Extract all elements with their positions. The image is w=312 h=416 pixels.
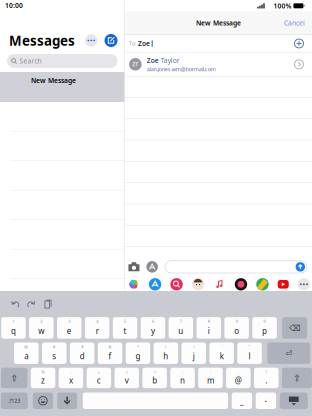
- button[interactable]: 7: [169, 317, 193, 339]
- staticText: v: [125, 375, 129, 386]
- staticText: =: [126, 369, 128, 374]
- button[interactable]: New Message: [0, 72, 124, 102]
- button[interactable]: 2: [29, 317, 54, 339]
- staticText: *: [137, 344, 139, 349]
- staticText: f: [109, 351, 112, 361]
- button[interactable]: /: [142, 368, 167, 388]
- staticText: 4: [96, 319, 98, 324]
- button[interactable]: ,: [226, 368, 251, 388]
- button[interactable]: &: [98, 342, 122, 364]
- staticText: s: [52, 351, 56, 361]
- button[interactable]: ⌫: [282, 317, 307, 339]
- staticText: w: [38, 325, 44, 336]
- button[interactable]: ⏎: [267, 342, 310, 364]
- button[interactable]: ⇧: [282, 368, 312, 388]
- button[interactable]: More apps: [298, 278, 310, 290]
- staticText: alan.jones.wm@hotmail.com: [147, 66, 216, 73]
- button[interactable]: ZT: [125, 53, 312, 76]
- button[interactable]: App Store: [149, 278, 161, 290]
- button[interactable]: Undo: [11, 299, 20, 308]
- button[interactable]: *: [126, 342, 150, 364]
- button[interactable]: Paste: [43, 299, 52, 308]
- button[interactable]: Photos: [127, 278, 140, 290]
- staticText: .: [265, 375, 267, 386]
- staticText: n: [180, 375, 185, 386]
- button[interactable]: Hide keyboard: [280, 392, 308, 409]
- button[interactable]: 1: [1, 317, 26, 339]
- staticText: #: [53, 344, 56, 349]
- button[interactable]: Redo: [26, 299, 35, 308]
- button[interactable]: Music: [213, 278, 226, 290]
- button[interactable]: [83, 392, 228, 409]
- button[interactable]: Cancel: [277, 15, 312, 30]
- button[interactable]: 8: [196, 317, 221, 339]
- button[interactable]: -: [256, 392, 276, 409]
- staticText: a: [24, 351, 28, 361]
- button[interactable]: 5: [113, 317, 137, 339]
- staticText: 5: [124, 319, 126, 324]
- staticText: 0: [264, 319, 266, 324]
- staticText: +: [98, 369, 100, 374]
- staticText: p: [262, 325, 267, 336]
- button[interactable]: (: [154, 342, 178, 364]
- button[interactable]: .?123: [1, 392, 28, 409]
- staticText: ;: [182, 369, 183, 374]
- button[interactable]: %: [31, 368, 55, 388]
- button[interactable]: Add contact: [294, 38, 304, 48]
- staticText: i: [208, 325, 210, 336]
- staticText: 1: [12, 319, 14, 324]
- staticText: New Message: [196, 18, 241, 27]
- button[interactable]: More options: [85, 34, 97, 47]
- staticText: Taylor: [159, 56, 180, 65]
- button[interactable]: Send: [296, 262, 305, 271]
- button[interactable]: ): [181, 342, 206, 364]
- button[interactable]: App Store: [146, 261, 158, 273]
- staticText: ⇧: [293, 373, 301, 383]
- staticText: b: [152, 375, 157, 386]
- staticText: ,: [238, 369, 239, 374]
- button[interactable]: -: [59, 368, 83, 388]
- staticText: 9: [236, 319, 238, 324]
- button[interactable]: Emoji keyboard: [33, 392, 53, 409]
- staticText: 8: [208, 319, 210, 324]
- staticText: r: [96, 325, 99, 336]
- button[interactable]: Store search: [170, 278, 183, 290]
- button[interactable]: YouTube: [278, 280, 289, 289]
- button[interactable]: 3: [57, 317, 81, 339]
- button[interactable]: 0: [252, 317, 277, 339]
- staticText: z: [41, 375, 45, 386]
- button[interactable]: Memoji: [192, 278, 204, 290]
- button[interactable]: ;: [170, 368, 195, 388]
- button[interactable]: ?: [254, 368, 278, 388]
- button[interactable]: ': [209, 342, 234, 364]
- staticText: 6: [152, 319, 154, 324]
- button[interactable]: Camera: [128, 261, 140, 273]
- staticText: x: [69, 375, 73, 386]
- staticText: ': [221, 344, 222, 349]
- button[interactable]: New message: [104, 34, 117, 47]
- button[interactable]: ": [237, 342, 262, 364]
- staticText: To:: [129, 40, 136, 47]
- button[interactable]: Apple Music: [235, 278, 247, 290]
- button[interactable]: 4: [85, 317, 109, 339]
- button[interactable]: @: [14, 342, 39, 364]
- staticText: Messages: [9, 32, 75, 49]
- staticText: -: [264, 395, 267, 406]
- button[interactable]: Maps: [256, 278, 269, 290]
- staticText: Zoe: [147, 56, 159, 65]
- button[interactable]: =: [114, 368, 139, 388]
- button[interactable]: :: [198, 368, 223, 388]
- staticText: Zoe: [138, 39, 150, 48]
- button[interactable]: $: [70, 342, 94, 364]
- button[interactable]: #: [42, 342, 66, 364]
- staticText: t: [124, 325, 127, 336]
- button[interactable]: _: [232, 392, 252, 409]
- button[interactable]: +: [87, 368, 111, 388]
- staticText: @: [235, 375, 242, 386]
- staticText: -: [70, 369, 71, 374]
- button[interactable]: Dictation: [57, 392, 77, 409]
- button[interactable]: 6: [141, 317, 165, 339]
- staticText: l: [249, 351, 251, 361]
- button[interactable]: 9: [224, 317, 249, 339]
- button[interactable]: ⇧: [1, 368, 27, 388]
